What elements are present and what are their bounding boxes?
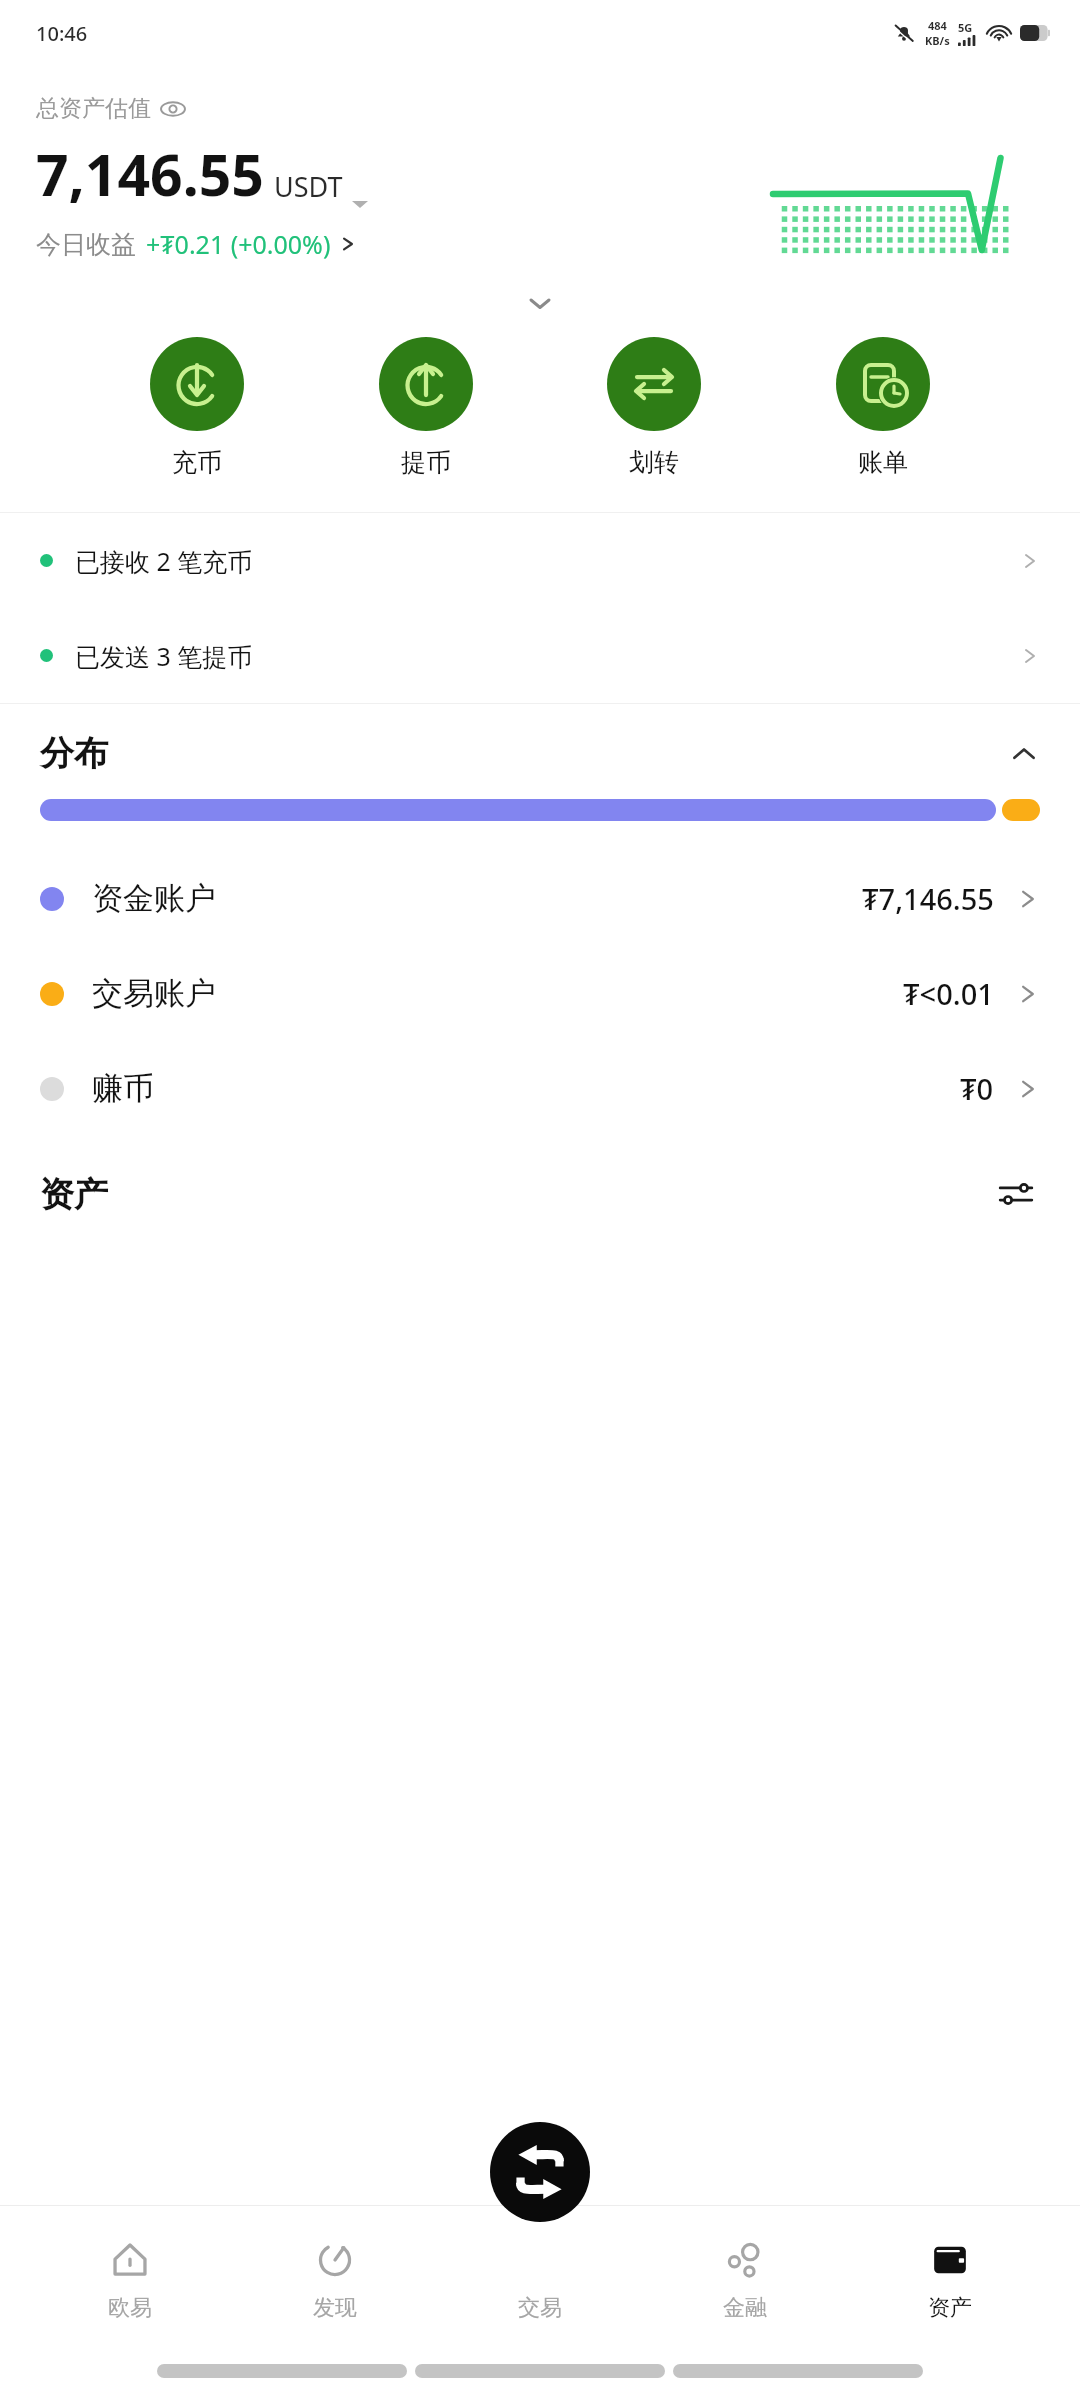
staticText: 5G	[958, 20, 973, 35]
staticText: 已接收 2 笔充币	[75, 544, 253, 578]
button[interactable]: 资金账户	[0, 851, 1080, 946]
staticText: 资产	[928, 2294, 972, 2322]
staticText: 充币	[172, 447, 222, 478]
button[interactable]: 金融	[670, 2232, 820, 2326]
button[interactable]: 赚币	[0, 1041, 1080, 1136]
staticText: 分布	[40, 732, 108, 775]
staticText: 已发送 3 笔提币	[75, 639, 253, 673]
button[interactable]: 账单	[830, 337, 936, 478]
button[interactable]: 交易账户	[0, 946, 1080, 1041]
staticText: ₮7,146.55	[862, 879, 994, 918]
staticText: 资产	[40, 1173, 108, 1216]
staticText: +₮0.21 (+0.00%)	[146, 227, 331, 261]
staticText: 484	[928, 18, 947, 33]
staticText: 总资产估值	[36, 94, 151, 123]
button[interactable]: 已接收 2 笔充币	[0, 513, 1080, 608]
staticText: ₮<0.01	[903, 974, 994, 1013]
button[interactable]: 今日收益	[36, 227, 357, 261]
staticText: 今日收益	[36, 229, 136, 260]
staticText: 赚币	[92, 1069, 154, 1108]
other: Collapse distribution	[1008, 738, 1040, 770]
button[interactable]: 分布	[0, 732, 1080, 775]
staticText: 交易	[518, 2294, 562, 2322]
button[interactable]: 欧易	[55, 2232, 205, 2326]
button[interactable]: 发现	[260, 2232, 410, 2326]
staticText: KB/s	[925, 33, 950, 48]
button[interactable]: 划转	[601, 337, 707, 478]
staticText: 提币	[401, 447, 451, 478]
other: Toggle balance visibility	[161, 97, 185, 121]
staticText: 欧易	[108, 2294, 152, 2322]
button[interactable]: Filter	[992, 1170, 1040, 1218]
staticText: 发现	[313, 2294, 357, 2322]
staticText: 账单	[858, 447, 908, 478]
staticText: 资金账户	[92, 879, 216, 918]
button[interactable]: Trade	[490, 2122, 590, 2222]
staticText: 金融	[723, 2294, 767, 2322]
staticText: 7,146.55	[36, 135, 264, 213]
button[interactable]: 已发送 3 笔提币	[0, 608, 1080, 703]
staticText: ₮0	[960, 1069, 994, 1108]
button[interactable]: 交易	[465, 2232, 615, 2326]
button[interactable]: Collapse	[0, 283, 1080, 323]
button[interactable]: 提币	[373, 337, 479, 478]
button[interactable]: 充币	[144, 337, 250, 478]
button[interactable]: 总资产估值	[36, 92, 185, 125]
staticText: 10:46	[36, 20, 88, 47]
staticText: 划转	[629, 447, 679, 478]
other: Collapse	[525, 288, 555, 318]
staticText: 交易账户	[92, 974, 216, 1013]
button[interactable]: 7,146.55	[36, 135, 368, 213]
staticText: USDT	[274, 168, 343, 205]
button[interactable]: 资产	[875, 2232, 1025, 2326]
